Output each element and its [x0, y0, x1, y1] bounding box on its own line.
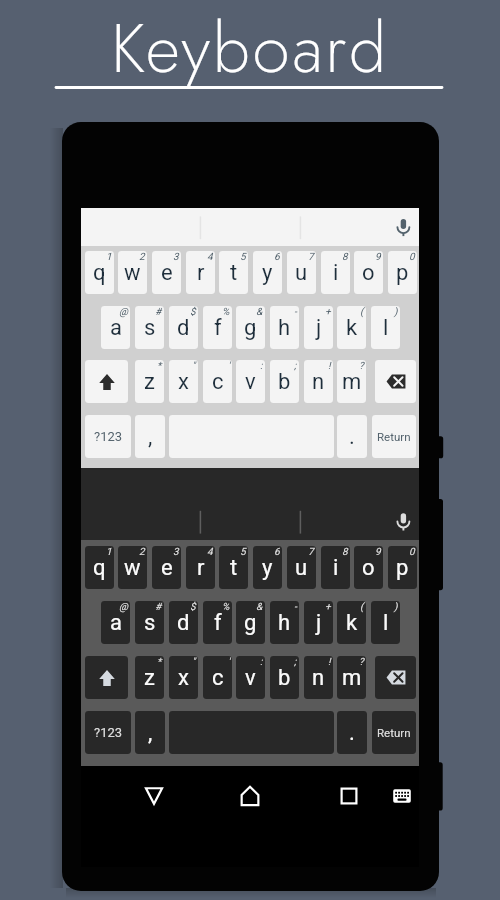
staticText: k — [346, 610, 358, 636]
button[interactable]: n — [304, 656, 333, 699]
button[interactable]: j — [304, 306, 333, 349]
button[interactable]: a — [101, 601, 130, 644]
button[interactable]: b — [270, 360, 299, 403]
button[interactable]: h — [270, 601, 299, 644]
staticText: ? — [359, 360, 364, 372]
button[interactable]: i — [321, 251, 350, 294]
staticText: g — [244, 315, 257, 341]
staticText: t — [230, 260, 238, 286]
button[interactable]: u — [287, 251, 316, 294]
button[interactable]: t — [219, 546, 248, 589]
staticText: d — [177, 315, 190, 341]
staticText: e — [161, 555, 173, 581]
button[interactable]: Backspace — [375, 360, 416, 403]
button[interactable]: Shift — [85, 360, 128, 403]
staticText: o — [362, 555, 375, 581]
staticText: 2 — [139, 251, 145, 263]
button[interactable]: r — [186, 251, 215, 294]
staticText: 1 — [106, 546, 112, 558]
staticText: a — [110, 610, 122, 636]
staticText: $ — [190, 601, 196, 613]
button[interactable]: a — [101, 306, 130, 349]
button[interactable]: z — [135, 360, 164, 403]
button[interactable]: l — [371, 601, 400, 644]
button[interactable]: y — [253, 546, 282, 589]
button[interactable]: g — [236, 306, 265, 349]
button[interactable]: q — [85, 251, 114, 294]
button[interactable]: x — [169, 360, 198, 403]
button[interactable]: Return — [372, 415, 416, 458]
button[interactable]: , — [135, 711, 165, 754]
button[interactable]: o — [354, 251, 383, 294]
button[interactable]: n — [304, 360, 333, 403]
button[interactable]: l — [371, 306, 400, 349]
button[interactable]: Shift — [85, 656, 128, 699]
button[interactable]: , — [135, 415, 165, 458]
button[interactable]: ?123 — [85, 711, 131, 754]
button[interactable]: k — [337, 306, 366, 349]
button[interactable]: v — [236, 360, 265, 403]
button[interactable]: k — [337, 601, 366, 644]
staticText: 8 — [342, 546, 348, 558]
button[interactable]: b — [270, 656, 299, 699]
staticText: @ — [119, 306, 128, 318]
staticText: f — [214, 315, 222, 341]
staticText: n — [312, 665, 325, 691]
button[interactable]: c — [203, 360, 232, 403]
staticText: % — [222, 601, 230, 613]
button[interactable]: d — [169, 306, 198, 349]
button[interactable]: m — [337, 360, 366, 403]
button[interactable]: Word suggestions — [81, 468, 419, 540]
staticText: s — [144, 610, 156, 636]
button[interactable]: u — [287, 546, 316, 589]
button[interactable]: Recent apps — [333, 781, 365, 811]
staticText: 6 — [274, 251, 280, 263]
button[interactable]: Backspace — [375, 656, 416, 699]
button[interactable]: d — [169, 601, 198, 644]
staticText: g — [244, 610, 257, 636]
button[interactable]: x — [169, 656, 198, 699]
button[interactable]: o — [354, 546, 383, 589]
button[interactable]: Return — [372, 711, 416, 754]
button[interactable]: Back — [138, 781, 170, 811]
button[interactable]: z — [135, 656, 164, 699]
button[interactable]: . — [337, 711, 367, 754]
staticText: " — [192, 360, 196, 372]
button[interactable]: . — [337, 415, 367, 458]
button[interactable]: q — [85, 546, 114, 589]
button[interactable]: Word suggestions — [81, 208, 419, 246]
staticText: ( — [360, 601, 364, 613]
button[interactable]: v — [236, 656, 265, 699]
button[interactable]: p — [388, 251, 417, 294]
button[interactable]: w — [118, 546, 147, 589]
button[interactable]: e — [152, 546, 181, 589]
button[interactable]: r — [186, 546, 215, 589]
staticText: : — [260, 360, 263, 372]
button[interactable]: Change keyboard — [386, 781, 418, 811]
button[interactable]: e — [152, 251, 181, 294]
button[interactable]: i — [321, 546, 350, 589]
button[interactable]: c — [203, 656, 232, 699]
staticText: . — [349, 424, 355, 450]
button[interactable]: p — [388, 546, 417, 589]
staticText: 1 — [106, 251, 112, 263]
staticText: # — [155, 306, 162, 318]
button[interactable]: Home — [234, 781, 266, 811]
button[interactable]: w — [118, 251, 147, 294]
button[interactable]: s — [135, 601, 164, 644]
button[interactable]: f — [203, 306, 232, 349]
button[interactable]: f — [203, 601, 232, 644]
button[interactable]: t — [219, 251, 248, 294]
button[interactable]: g — [236, 601, 265, 644]
staticText: x — [178, 369, 189, 395]
button[interactable]: h — [270, 306, 299, 349]
staticText: , — [148, 720, 153, 746]
button[interactable]: s — [135, 306, 164, 349]
button[interactable]: m — [337, 656, 366, 699]
staticText: - — [294, 601, 297, 613]
button[interactable]: j — [304, 601, 333, 644]
button[interactable]: y — [253, 251, 282, 294]
button[interactable]: ?123 — [85, 415, 131, 458]
